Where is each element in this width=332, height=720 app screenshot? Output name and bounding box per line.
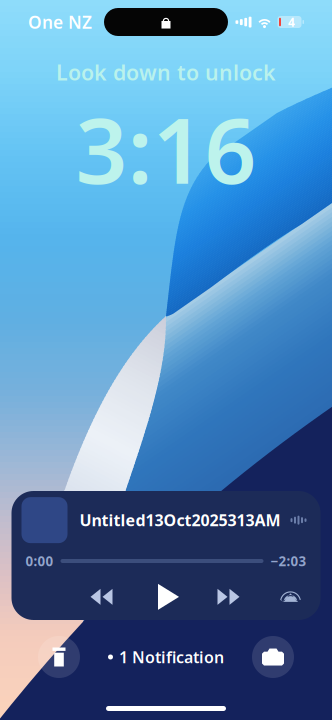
staticText: One NZ [28, 10, 92, 33]
staticText: 3:16 [75, 88, 256, 209]
button[interactable]: Camera [252, 636, 294, 678]
staticText: Untitled13Oct2025313AM [79, 509, 280, 531]
staticText: −2:03 [270, 552, 306, 570]
staticText: 0:00 [25, 552, 53, 570]
button[interactable]: Flashlight [38, 636, 80, 678]
button[interactable]: Play [146, 580, 190, 614]
button[interactable]: AirPlay [272, 580, 308, 614]
button[interactable]: Rewind [79, 580, 123, 614]
staticText: Look down to unlock [56, 58, 276, 86]
button[interactable]: Fast forward [206, 580, 250, 614]
staticText: 4 [288, 14, 295, 30]
staticText: 1 Notification [119, 646, 224, 668]
